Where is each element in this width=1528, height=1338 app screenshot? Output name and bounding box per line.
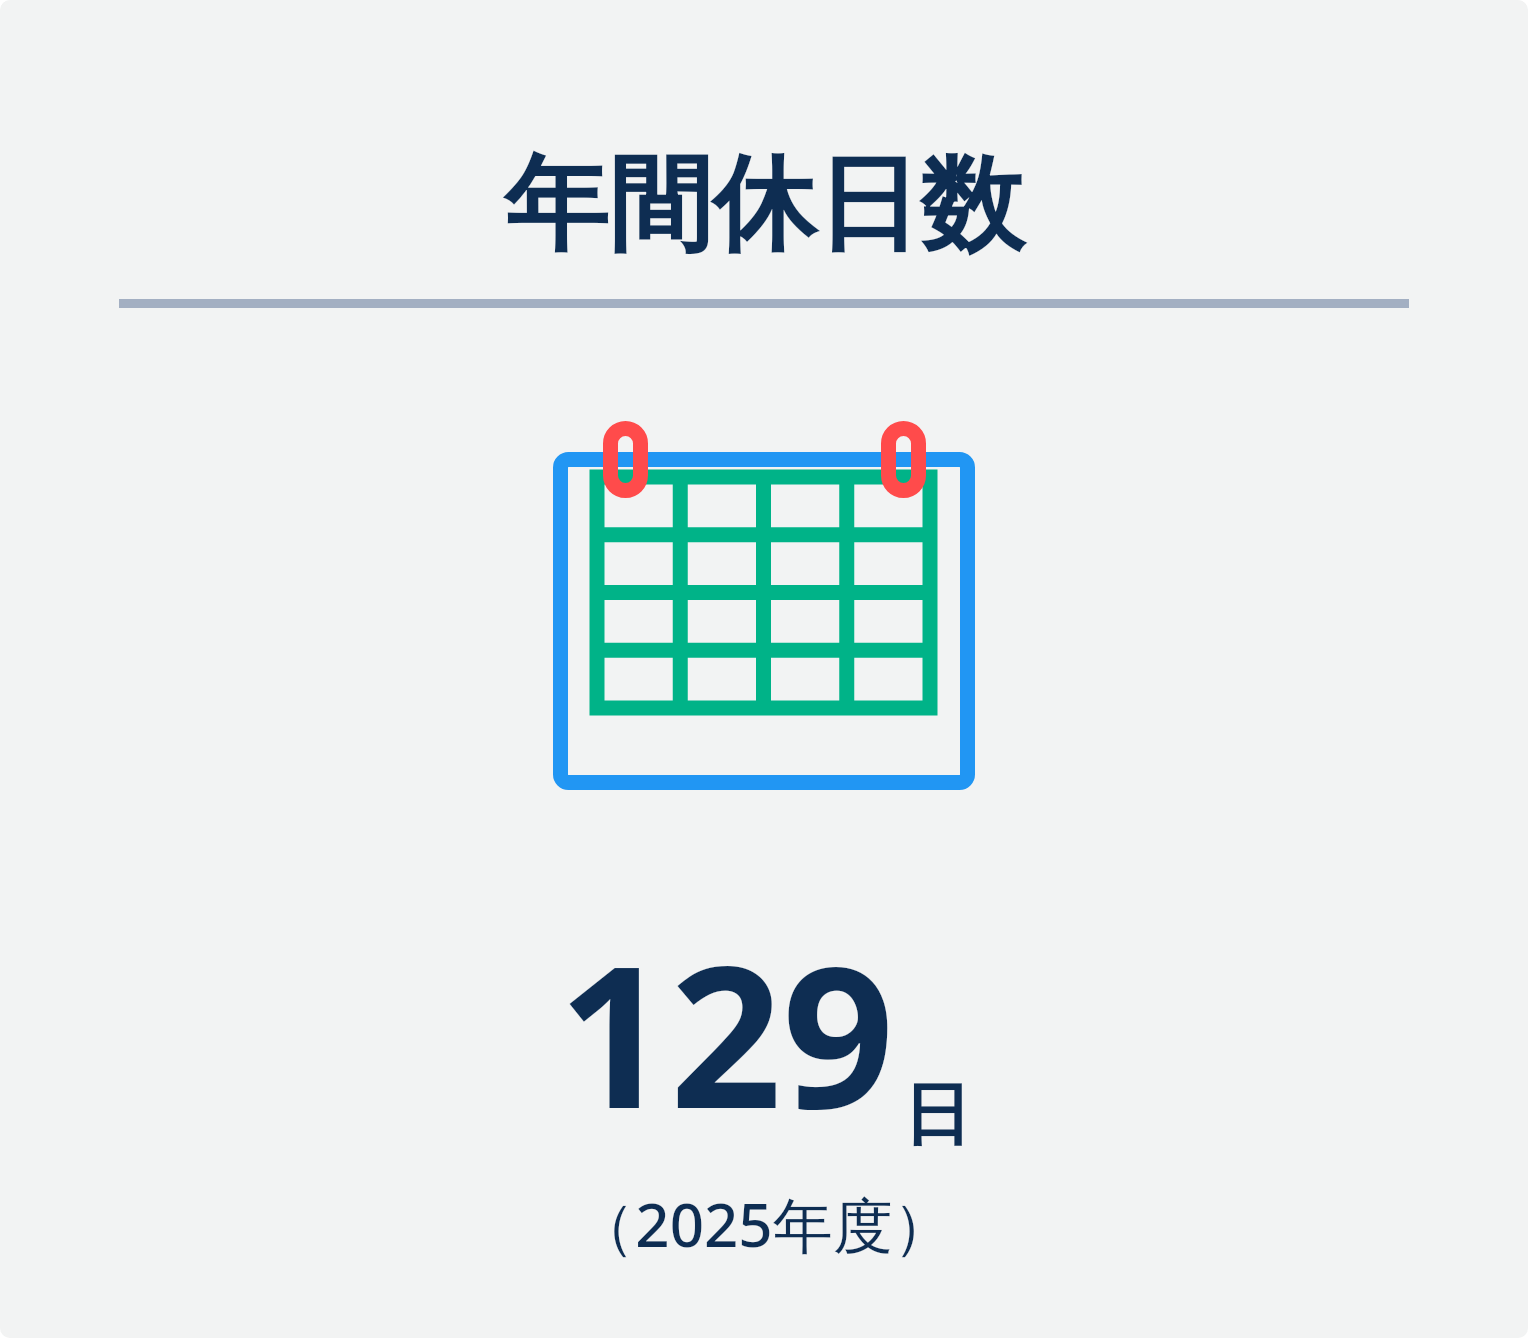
- staticText: 年間休日数: [504, 140, 1024, 271]
- staticText: （2025年度）: [575, 1183, 953, 1265]
- staticText: 日: [903, 1073, 971, 1159]
- staticText: 129: [558, 898, 895, 1165]
- other: Calendar: [553, 410, 975, 790]
